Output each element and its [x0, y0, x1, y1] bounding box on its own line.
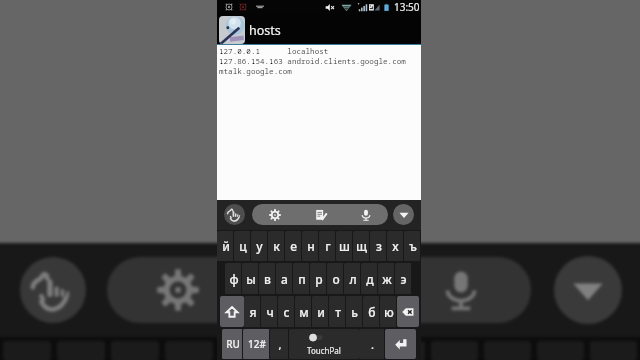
staticText: щ [356, 238, 367, 254]
button[interactable]: Edit text [298, 204, 343, 225]
staticText: д [366, 271, 374, 287]
staticText: г [325, 238, 331, 254]
staticText: и [317, 304, 325, 320]
button[interactable]: о [327, 263, 344, 294]
button[interactable]: ы [242, 263, 259, 294]
button[interactable]: щ [353, 231, 370, 261]
button[interactable]: э [395, 263, 412, 294]
button[interactable]: RU [222, 329, 243, 359]
staticText: 127.86.154.163 android.clients.google.co… [219, 56, 406, 66]
button[interactable]: ц [234, 231, 251, 261]
staticText: е [290, 238, 297, 254]
staticText: с [283, 304, 290, 320]
button[interactable]: TouchPal menu [224, 204, 245, 225]
button[interactable]: Settings [252, 204, 298, 225]
button[interactable]: . [359, 329, 385, 359]
button[interactable]: у [251, 231, 268, 261]
staticText: х [392, 238, 399, 254]
staticText: ы [246, 271, 256, 287]
staticText: н [307, 238, 315, 254]
staticText: т [335, 304, 341, 320]
staticText: ъ [409, 238, 417, 254]
button[interactable]: Voice input [343, 204, 388, 225]
button[interactable]: т [329, 296, 346, 327]
button[interactable]: е [285, 231, 302, 261]
staticText: hosts [249, 22, 281, 39]
button[interactable]: с [278, 296, 295, 327]
staticText: й [222, 238, 230, 254]
staticText: п [298, 271, 306, 287]
staticText: м [299, 304, 309, 320]
button[interactable]: к [268, 231, 285, 261]
staticText: я [249, 304, 257, 320]
staticText: ч [266, 304, 274, 320]
staticText: б [368, 304, 376, 320]
button[interactable]: н [302, 231, 319, 261]
staticText: в [264, 271, 271, 287]
button[interactable]: д [361, 263, 378, 294]
button[interactable]: ю [380, 296, 397, 327]
button[interactable]: в [259, 263, 276, 294]
button[interactable]: р [310, 263, 327, 294]
staticText: 13:50 [394, 0, 420, 14]
staticText: у [256, 238, 263, 254]
button[interactable]: , [270, 329, 289, 359]
button[interactable]: п [293, 263, 310, 294]
button[interactable]: г [319, 231, 336, 261]
staticText: . [371, 337, 374, 352]
button[interactable]: м [295, 296, 312, 327]
button[interactable]: б [363, 296, 380, 327]
button[interactable]: Space [289, 329, 359, 359]
staticText: э [400, 271, 407, 287]
staticText: 127.0.0.1 localhost [219, 46, 329, 56]
staticText: RU [226, 337, 240, 351]
button[interactable]: ж [378, 263, 395, 294]
staticText: л [349, 271, 357, 287]
staticText: з [376, 238, 382, 254]
staticText: о [332, 271, 340, 287]
button[interactable]: ш [336, 231, 353, 261]
button[interactable]: ъ [404, 231, 421, 261]
staticText: ш [339, 238, 350, 254]
staticText: TouchPal [307, 345, 341, 356]
staticText: ю [384, 304, 394, 320]
staticText: ц [239, 238, 247, 254]
button[interactable]: и [312, 296, 329, 327]
button[interactable]: 12# [243, 329, 270, 359]
staticText: а [281, 271, 288, 287]
staticText: к [273, 238, 280, 254]
button[interactable]: й [217, 231, 234, 261]
button[interactable]: а [276, 263, 293, 294]
button[interactable]: з [370, 231, 387, 261]
staticText: ж [382, 271, 392, 287]
staticText: 12# [248, 337, 266, 351]
staticText: mtalk.google.com [219, 66, 292, 76]
button[interactable]: Shift [220, 296, 244, 327]
button[interactable]: ч [261, 296, 278, 327]
staticText: ь [351, 304, 358, 320]
button[interactable]: Backspace [397, 296, 419, 327]
button[interactable]: х [387, 231, 404, 261]
staticText: ф [229, 271, 239, 287]
staticText: р [315, 271, 323, 287]
button[interactable]: я [244, 296, 261, 327]
button[interactable]: л [344, 263, 361, 294]
button[interactable]: ф [225, 263, 242, 294]
button[interactable]: Hide keyboard [393, 204, 414, 225]
button[interactable]: ь [346, 296, 363, 327]
button[interactable]: Enter [385, 329, 416, 359]
staticText: , [278, 337, 282, 352]
